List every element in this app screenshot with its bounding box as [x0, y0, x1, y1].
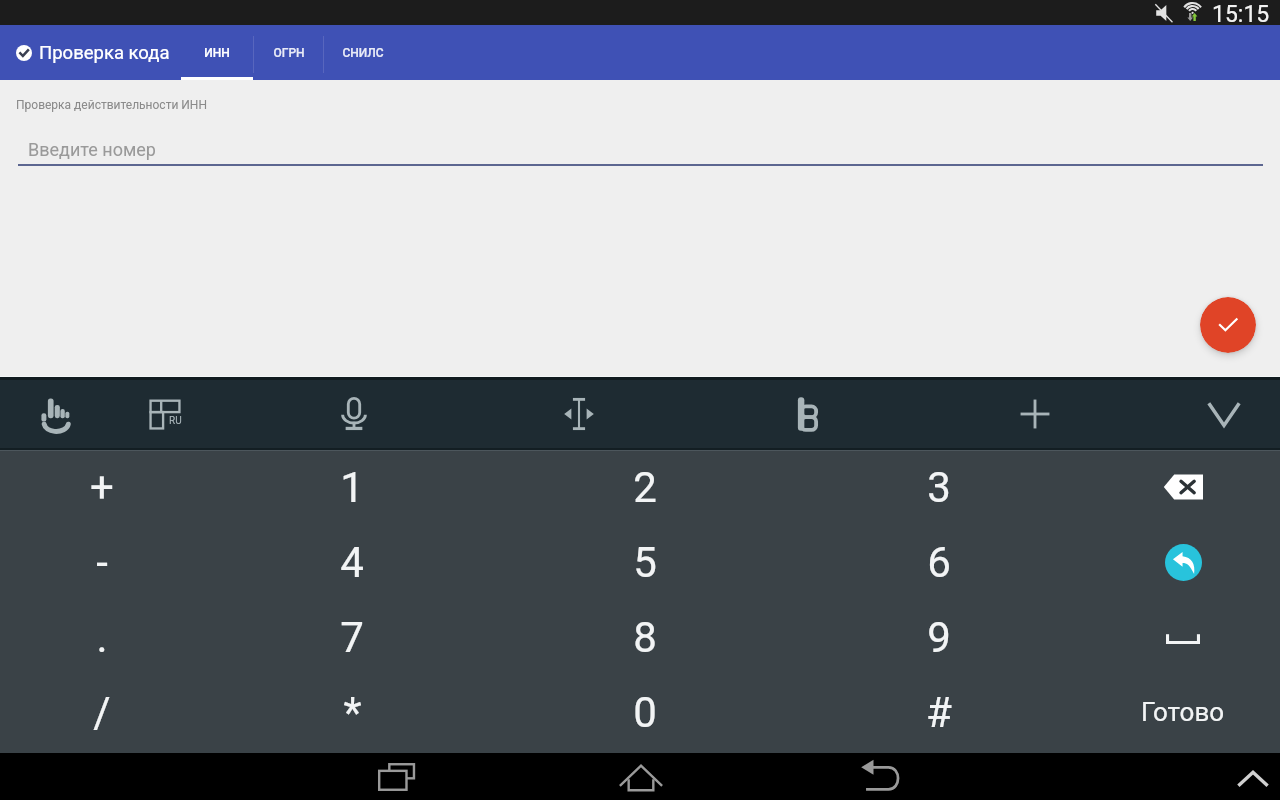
staticText: Готово [1141, 697, 1225, 727]
staticText: Введите номер [28, 139, 156, 160]
button[interactable]: 9 [793, 600, 1087, 676]
button[interactable]: * [228, 676, 500, 752]
button[interactable]: / [0, 676, 228, 752]
staticText: 8 [633, 613, 657, 662]
staticText: RU [169, 415, 182, 427]
button[interactable]: 3 [793, 450, 1087, 525]
staticText: ИНН [204, 46, 230, 60]
button[interactable]: Введите номер [18, 121, 1263, 166]
staticText: Проверка кода [39, 42, 170, 64]
button[interactable]: 1 [228, 450, 500, 525]
button[interactable]: СНИЛС [324, 25, 402, 80]
button[interactable]: # [793, 676, 1087, 752]
button[interactable]: Switch keyboard [135, 384, 195, 444]
button[interactable]: Expand [1229, 755, 1277, 800]
staticText: ОГРН [273, 46, 305, 60]
button[interactable]: Проверка кода [0, 25, 181, 80]
staticText: СНИЛС [342, 46, 384, 60]
staticText: 0 [633, 688, 657, 737]
staticText: / [93, 688, 111, 737]
button[interactable]: + [0, 450, 228, 525]
staticText: 5 [633, 538, 657, 587]
button[interactable]: Space [1087, 600, 1280, 676]
button[interactable]: Recents [375, 753, 423, 800]
button[interactable]: Split keyboard [777, 384, 837, 444]
button[interactable]: ОГРН [254, 25, 323, 80]
button[interactable]: 7 [228, 600, 500, 676]
button[interactable]: ИНН [181, 25, 253, 80]
staticText: - [96, 538, 108, 587]
button[interactable]: 2 [500, 450, 793, 525]
staticText: 1 [340, 463, 364, 512]
button[interactable]: 0 [500, 676, 793, 752]
staticText: 7 [340, 613, 364, 662]
button[interactable]: Backspace [1087, 450, 1280, 525]
button[interactable]: Handwriting [27, 384, 87, 444]
staticText: 15:15 [1212, 1, 1270, 26]
staticText: 4 [340, 538, 364, 587]
button[interactable]: Voice input [324, 384, 384, 444]
button[interactable]: 5 [500, 525, 793, 600]
button[interactable]: 8 [500, 600, 793, 676]
button[interactable]: Hide keyboard [1194, 384, 1254, 444]
button[interactable]: 6 [793, 525, 1087, 600]
button[interactable]: Готово [1087, 676, 1280, 752]
button[interactable]: - [0, 525, 228, 600]
staticText: 9 [927, 613, 951, 662]
staticText: . [96, 613, 108, 662]
staticText: 6 [927, 538, 951, 587]
button[interactable]: Enter [1087, 525, 1280, 600]
staticText: 2 [633, 463, 657, 512]
staticText: * [343, 688, 362, 737]
button[interactable]: Back [857, 753, 905, 800]
staticText: Проверка действительности ИНН [16, 98, 207, 112]
button[interactable]: Проверить [1200, 297, 1256, 353]
button[interactable]: More options [1005, 384, 1065, 444]
button[interactable]: 4 [228, 525, 500, 600]
button[interactable]: Home [617, 754, 665, 800]
button[interactable]: . [0, 600, 228, 676]
staticText: + [90, 463, 114, 512]
button[interactable]: Move cursor [549, 384, 609, 444]
staticText: 3 [927, 463, 951, 512]
staticText: # [926, 688, 952, 737]
